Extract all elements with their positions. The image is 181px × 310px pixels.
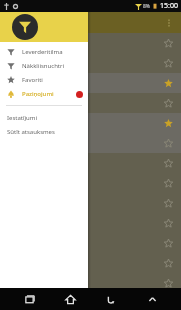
button[interactable]	[0, 273, 181, 293]
button[interactable]: Favoriti	[0, 73, 88, 87]
button[interactable]	[0, 213, 181, 233]
button[interactable]: Iestatījumi	[0, 111, 88, 125]
button[interactable]: App logo	[12, 14, 38, 40]
button[interactable]	[0, 133, 181, 153]
button[interactable]: Sūtīt atsauksmes	[0, 125, 88, 139]
button[interactable]: Back	[102, 290, 120, 308]
button[interactable]	[0, 173, 181, 193]
button[interactable]: Expand	[143, 290, 161, 308]
button[interactable]	[0, 93, 181, 113]
button[interactable]	[0, 253, 181, 273]
staticText: Sūtīt atsauksmes	[7, 128, 55, 136]
button[interactable]: Näkkliisnuchtri	[0, 59, 88, 73]
staticText: Leverderitilma	[22, 48, 63, 56]
button[interactable]	[0, 53, 181, 73]
button[interactable]	[0, 153, 181, 173]
button[interactable]: Recents	[20, 290, 38, 308]
staticText: Favoriti	[22, 76, 43, 84]
staticText: 15:00	[160, 1, 178, 11]
button[interactable]: Home	[61, 290, 79, 308]
button[interactable]	[0, 73, 181, 93]
staticText: Iestatījumi	[7, 114, 37, 122]
button[interactable]: Paziņojumi	[0, 87, 88, 101]
staticText: Näkkliisnuchtri	[22, 62, 65, 70]
button[interactable]	[0, 193, 181, 213]
button[interactable]: More options	[161, 15, 177, 31]
staticText: 8%	[143, 3, 151, 10]
button[interactable]	[0, 33, 181, 53]
button[interactable]	[0, 113, 181, 133]
button[interactable]	[0, 233, 181, 253]
staticText: Paziņojumi	[22, 90, 54, 98]
button[interactable]: Leverderitilma	[0, 45, 88, 59]
